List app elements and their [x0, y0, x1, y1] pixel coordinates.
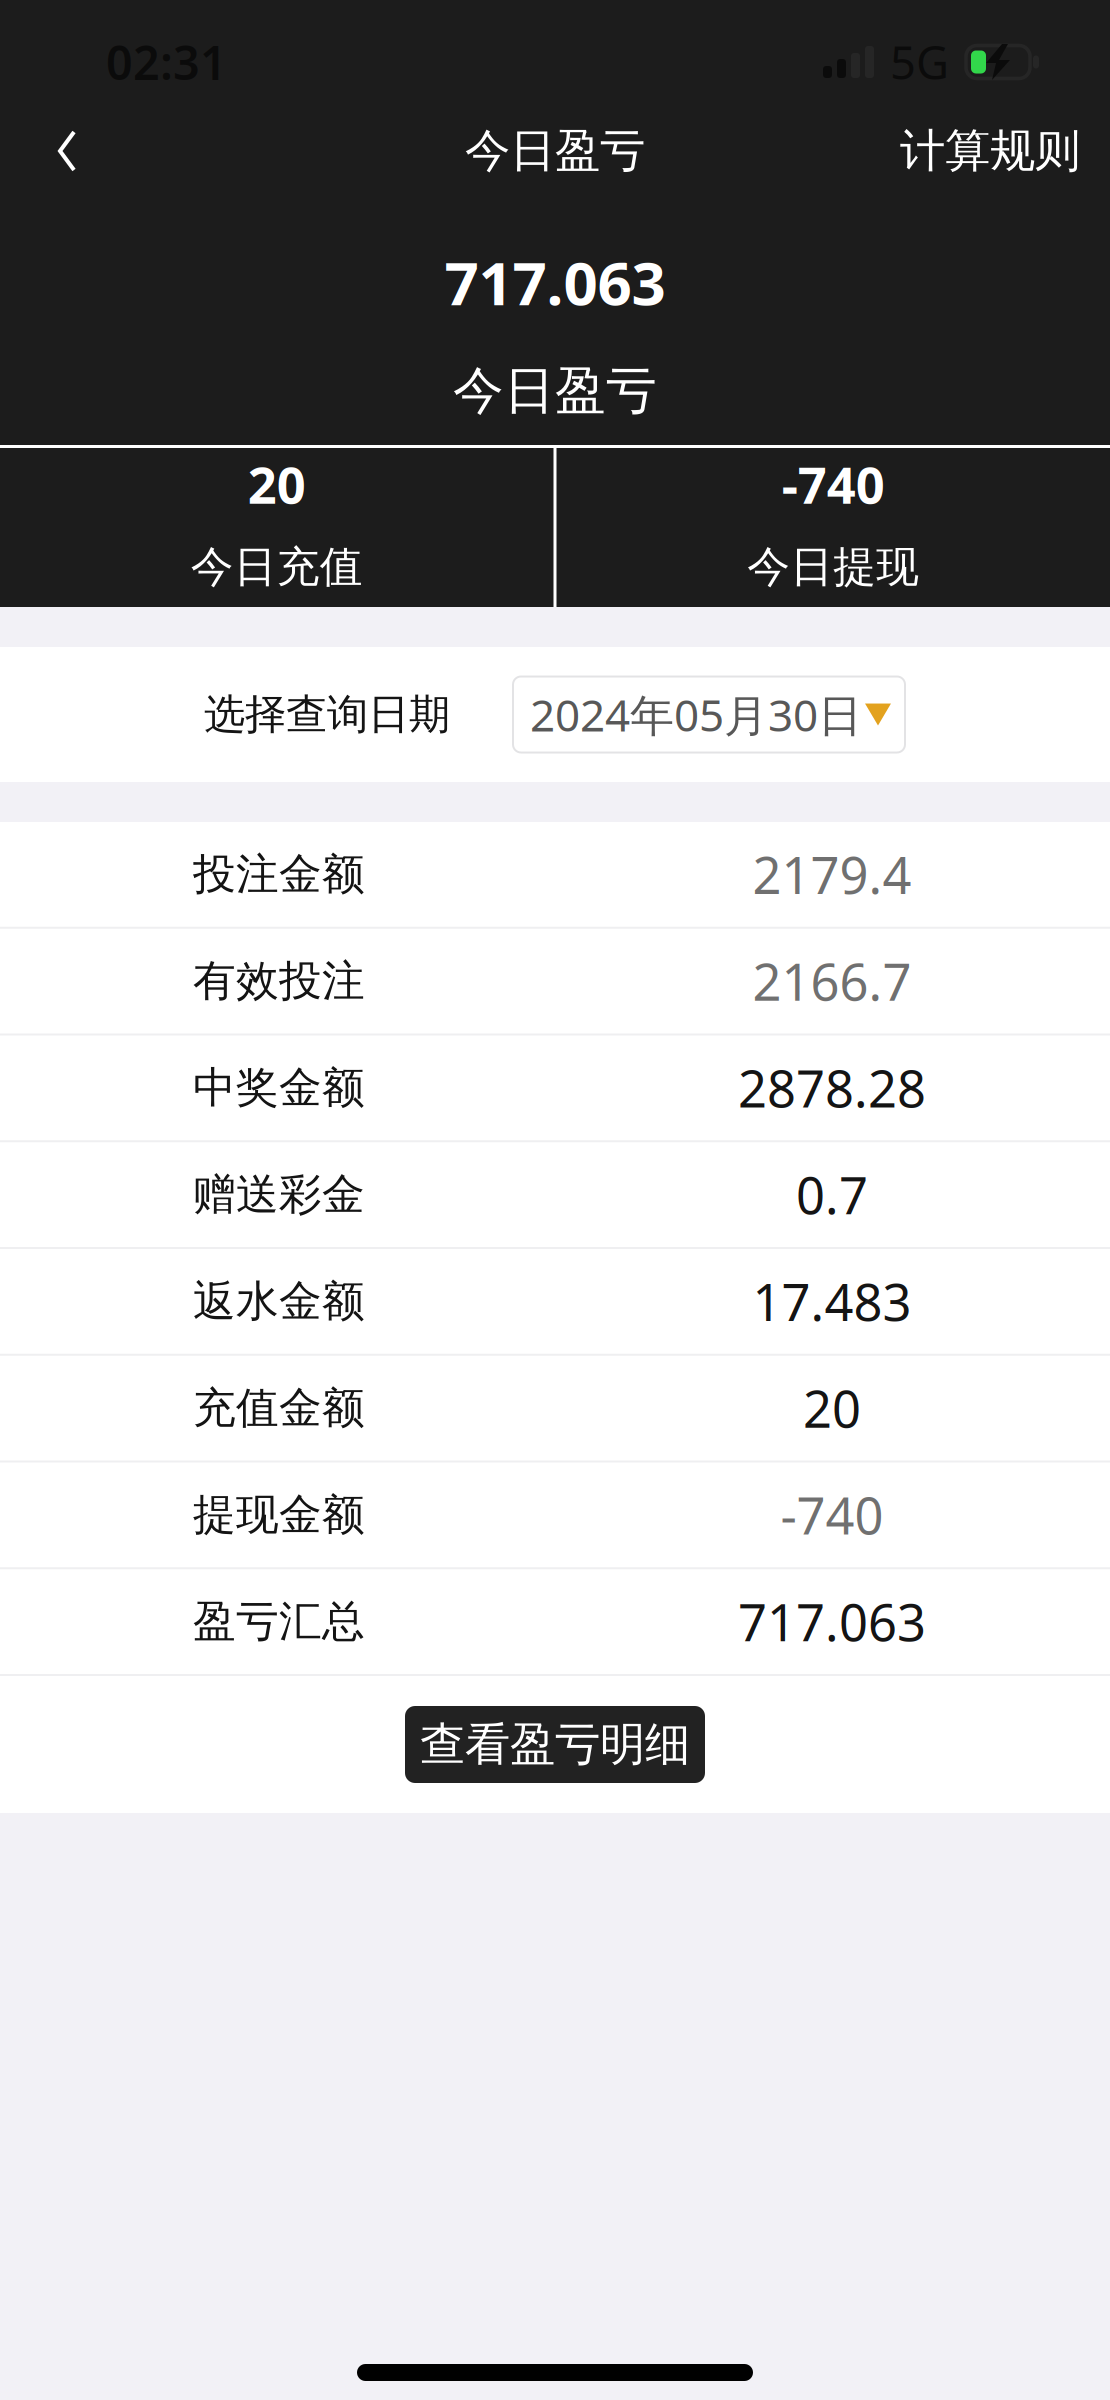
staticText: 返水金额: [193, 1275, 365, 1328]
staticText: 选择查询日期: [204, 689, 450, 740]
button[interactable]: Back: [0, 106, 134, 196]
button[interactable]: 2024年05月30日: [513, 676, 905, 752]
staticText: 17.483: [752, 1268, 911, 1335]
staticText: 今日充值: [191, 541, 363, 593]
staticText: 查看盈亏明细: [420, 1717, 690, 1772]
staticText: -740: [780, 1481, 883, 1548]
staticText: 2878.28: [738, 1054, 926, 1121]
staticText: -740: [782, 450, 885, 518]
staticText: 20: [803, 1374, 861, 1442]
staticText: 今日盈亏: [453, 360, 657, 422]
staticText: 充值金额: [193, 1382, 365, 1434]
staticText: 717.063: [738, 1588, 926, 1655]
staticText: 有效投注: [193, 955, 365, 1007]
staticText: 赠送彩金: [193, 1168, 365, 1221]
staticText: 投注金额: [193, 848, 365, 901]
staticText: 2166.7: [752, 947, 911, 1015]
staticText: 717.063: [444, 242, 665, 322]
staticText: 提现金额: [193, 1489, 365, 1541]
staticText: 计算规则: [900, 123, 1080, 179]
button[interactable]: 查看盈亏明细: [405, 1706, 705, 1783]
staticText: 20: [248, 450, 306, 518]
staticText: 盈亏汇总: [193, 1595, 365, 1648]
staticText: 2024年05月30日: [530, 685, 862, 744]
staticText: 今日盈亏: [465, 123, 645, 179]
staticText: 02:31: [106, 31, 227, 93]
staticText: 中奖金额: [193, 1062, 365, 1114]
staticText: 0.7: [796, 1161, 868, 1228]
staticText: 2179.4: [752, 841, 911, 908]
staticText: 今日提现: [747, 541, 919, 593]
button[interactable]: 计算规则: [900, 106, 1110, 196]
staticText: 5G: [890, 32, 949, 92]
